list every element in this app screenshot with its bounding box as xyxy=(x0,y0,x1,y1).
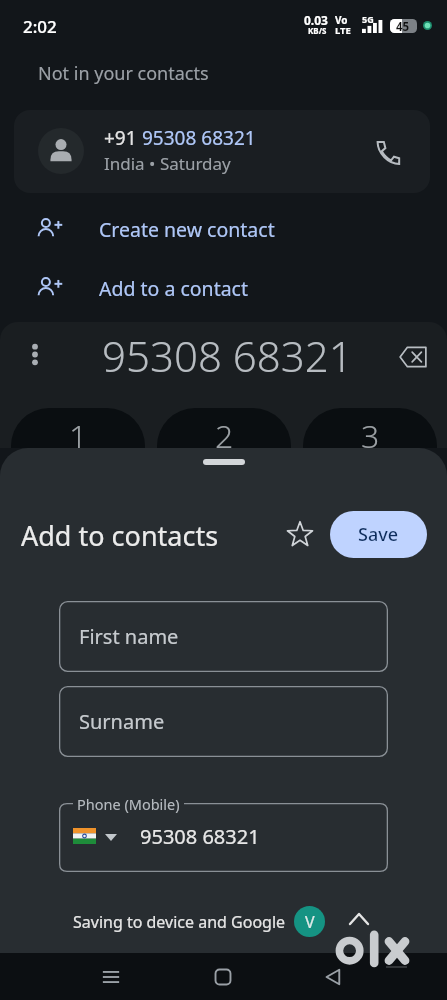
staticText: Saving to device and Google xyxy=(73,911,286,933)
staticText: +91 xyxy=(104,125,142,151)
button[interactable]: Surname xyxy=(59,686,388,757)
staticText: First name xyxy=(79,623,179,650)
button[interactable]: Add to favorites xyxy=(280,514,320,554)
staticText: 2:02 xyxy=(23,15,57,38)
button[interactable]: Recent apps xyxy=(87,953,135,1000)
button[interactable]: V xyxy=(294,906,325,937)
staticText: Create new contact xyxy=(99,216,275,243)
button[interactable]: +91 xyxy=(14,110,430,193)
staticText: Phone (Mobile) xyxy=(77,794,180,814)
staticText: 3 xyxy=(361,414,380,448)
staticText: India • Saturday xyxy=(104,152,231,175)
staticText: Not in your contacts xyxy=(38,61,209,86)
staticText: 5G xyxy=(362,13,374,25)
staticText: Surname xyxy=(79,708,165,735)
staticText: Add to a contact xyxy=(99,275,249,302)
staticText: LTE xyxy=(335,24,351,37)
button[interactable]: First name xyxy=(59,601,388,672)
button[interactable]: Back xyxy=(310,953,358,1000)
button[interactable]: 2 xyxy=(157,408,291,448)
button[interactable]: Save xyxy=(330,511,427,558)
staticText: 95308 68321 xyxy=(140,823,260,850)
staticText: 0.03 xyxy=(304,12,328,28)
staticText: 2 xyxy=(215,414,234,448)
button[interactable]: Home xyxy=(199,953,247,1000)
button[interactable]: Backspace xyxy=(395,339,431,375)
staticText: V xyxy=(305,911,315,933)
staticText: 45 xyxy=(396,19,410,33)
button[interactable]: 3 xyxy=(303,408,437,448)
staticText: 1 xyxy=(69,414,88,448)
button[interactable]: More options xyxy=(21,340,49,368)
staticText: Vo xyxy=(335,13,348,27)
staticText: 95308 68321 xyxy=(102,327,353,384)
button[interactable]: Add to a contact xyxy=(0,264,447,312)
button[interactable]: Expand account options xyxy=(341,901,377,937)
button[interactable]: Create new contact xyxy=(0,205,447,253)
button[interactable]: 1 xyxy=(11,408,145,448)
staticText: Save xyxy=(358,522,399,547)
staticText: KB/S xyxy=(308,25,327,36)
staticText: 95308 68321 xyxy=(142,125,256,151)
button[interactable]: Call xyxy=(370,134,406,170)
staticText: Add to contacts xyxy=(21,517,219,554)
